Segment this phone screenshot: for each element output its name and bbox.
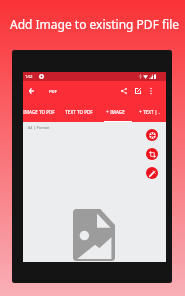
button[interactable]: Crop xyxy=(146,148,158,160)
button[interactable]: TEXT TO PDF xyxy=(61,101,97,122)
button[interactable]: + IMAGE xyxy=(103,101,128,122)
staticText: Add Image to existing PDF file xyxy=(10,16,180,32)
staticText: + IMAGE xyxy=(106,109,125,115)
button[interactable]: Rotate xyxy=(146,129,158,141)
button[interactable]: Back xyxy=(25,85,37,97)
staticText: 1:52 xyxy=(25,74,33,79)
staticText: TEXT TO PDF xyxy=(65,109,93,115)
staticText: PDF xyxy=(49,88,58,94)
button[interactable]: Share xyxy=(117,84,131,98)
staticText: A4 | Portrait xyxy=(28,125,50,130)
button[interactable]: + TEXT | . xyxy=(133,101,165,122)
button[interactable]: More options xyxy=(145,84,156,98)
button[interactable]: Open in editor xyxy=(131,84,145,98)
button[interactable]: Filters xyxy=(146,167,158,179)
staticText: IMAGE TO PDF xyxy=(23,109,55,115)
button[interactable]: IMAGE TO PDF xyxy=(20,101,58,122)
staticText: + TEXT | . xyxy=(139,109,160,115)
